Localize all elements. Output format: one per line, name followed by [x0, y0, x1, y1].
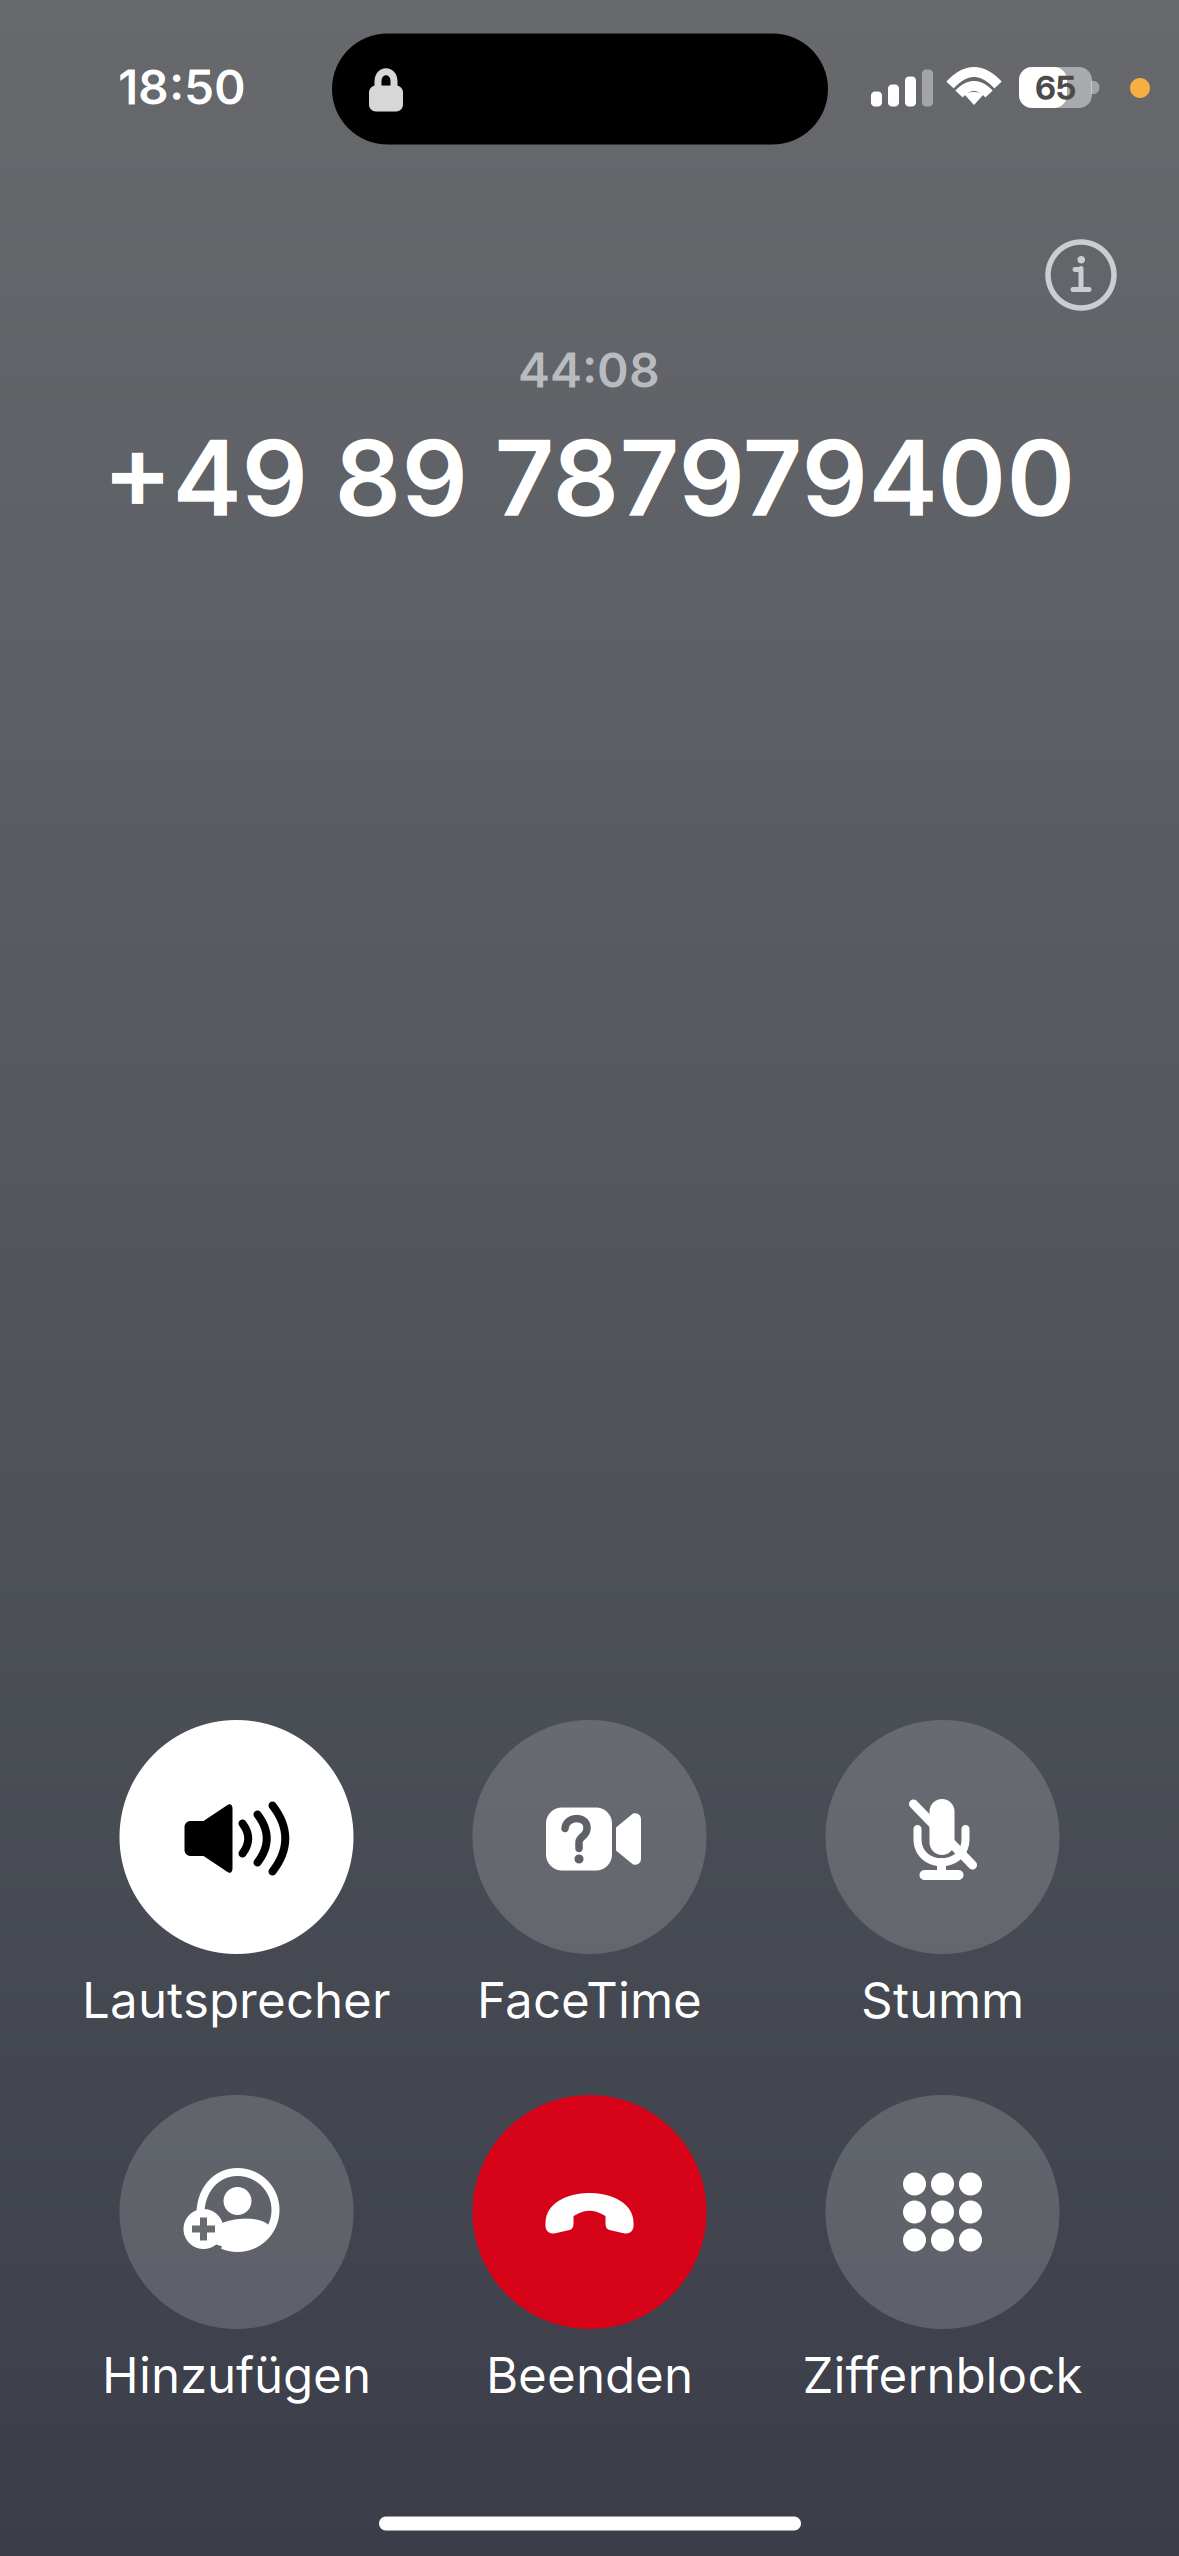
button[interactable]: Stumm: [770, 1720, 1115, 2050]
button[interactable]: Lautsprecher: [64, 1720, 409, 2050]
staticText: Stumm: [861, 1970, 1024, 2030]
button[interactable]: Info: [1048, 242, 1114, 308]
button[interactable]: Ziffernblock: [770, 2095, 1115, 2425]
staticText: 44:08: [518, 341, 660, 399]
button[interactable]: FaceTime: [417, 1720, 762, 2050]
staticText: Lautsprecher: [82, 1970, 391, 2030]
staticText: Beenden: [486, 2345, 693, 2405]
staticText: FaceTime: [477, 1970, 702, 2030]
staticText: 65: [1035, 67, 1076, 108]
staticText: 18:50: [118, 58, 246, 116]
staticText: Hinzufügen: [102, 2345, 371, 2405]
staticText: +49 89 787979400: [102, 415, 1075, 541]
button[interactable]: Beenden: [417, 2095, 762, 2425]
staticText: Ziffernblock: [802, 2345, 1082, 2405]
button[interactable]: Hinzufügen: [64, 2095, 409, 2425]
